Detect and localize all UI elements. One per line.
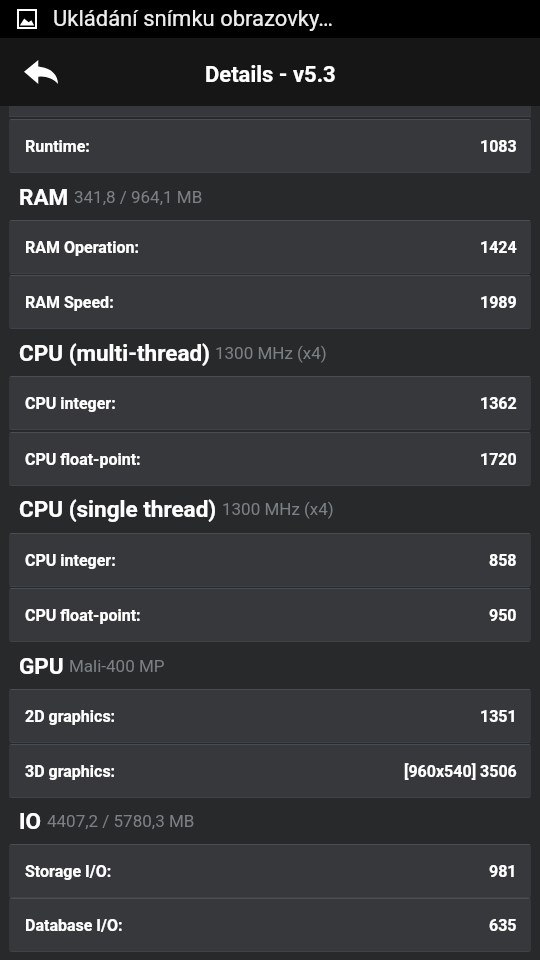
staticText: RAM Operation:	[25, 238, 139, 257]
button[interactable]: Back	[10, 42, 72, 102]
staticText: Database I/O:	[25, 916, 123, 935]
staticText: 1424	[480, 238, 517, 257]
staticText: 1300 MHz (x4)	[222, 499, 334, 519]
staticText: 1300 MHz (x4)	[215, 343, 327, 363]
staticText: Storage I/O:	[25, 862, 112, 881]
button[interactable]: CPU float-point:	[9, 432, 531, 486]
staticText: 858	[489, 551, 517, 570]
staticText: IO	[19, 808, 42, 834]
staticText: Details - v5.3	[205, 62, 336, 88]
staticText: 1362	[480, 394, 517, 413]
staticText: 1720	[480, 450, 517, 469]
staticText: CPU integer:	[25, 394, 116, 413]
staticText: GPU	[19, 653, 64, 679]
button[interactable]: Database I/O:	[9, 898, 531, 952]
button[interactable]: CPU integer:	[9, 376, 531, 430]
button[interactable]: RAM Speed:	[9, 275, 531, 329]
button[interactable]: Runtime:	[9, 119, 531, 173]
staticText: Mali-400 MP	[69, 656, 165, 676]
staticText: 1083	[480, 137, 517, 156]
staticText: CPU float-point:	[25, 450, 141, 469]
button[interactable]: 2D graphics:	[9, 689, 531, 743]
staticText: [960x540] 3506	[404, 762, 517, 781]
staticText: 4407,2 / 5780,3 MB	[47, 811, 195, 831]
staticText: CPU integer:	[25, 551, 116, 570]
staticText: 950	[489, 606, 517, 625]
staticText: 2D graphics:	[25, 707, 116, 726]
staticText: CPU (multi-thread)	[19, 340, 210, 366]
staticText: RAM	[19, 184, 69, 210]
staticText: CPU float-point:	[25, 606, 141, 625]
staticText: RAM Speed:	[25, 293, 114, 312]
button[interactable]: 3D graphics:	[9, 744, 531, 798]
staticText: 635	[489, 916, 517, 935]
staticText: 341,8 / 964,1 MB	[74, 187, 203, 207]
staticText: Ukládání snímku obrazovky…	[53, 6, 333, 32]
staticText: 1351	[480, 707, 517, 726]
staticText: Runtime:	[25, 137, 90, 156]
button[interactable]: RAM Operation:	[9, 220, 531, 274]
button[interactable]: CPU integer:	[9, 533, 531, 587]
staticText: 981	[489, 862, 517, 881]
staticText: 3D graphics:	[25, 762, 116, 781]
staticText: 1989	[480, 293, 517, 312]
staticText: CPU (single thread)	[19, 496, 217, 522]
button[interactable]: Storage I/O:	[9, 844, 531, 898]
button[interactable]: CPU float-point:	[9, 588, 531, 642]
